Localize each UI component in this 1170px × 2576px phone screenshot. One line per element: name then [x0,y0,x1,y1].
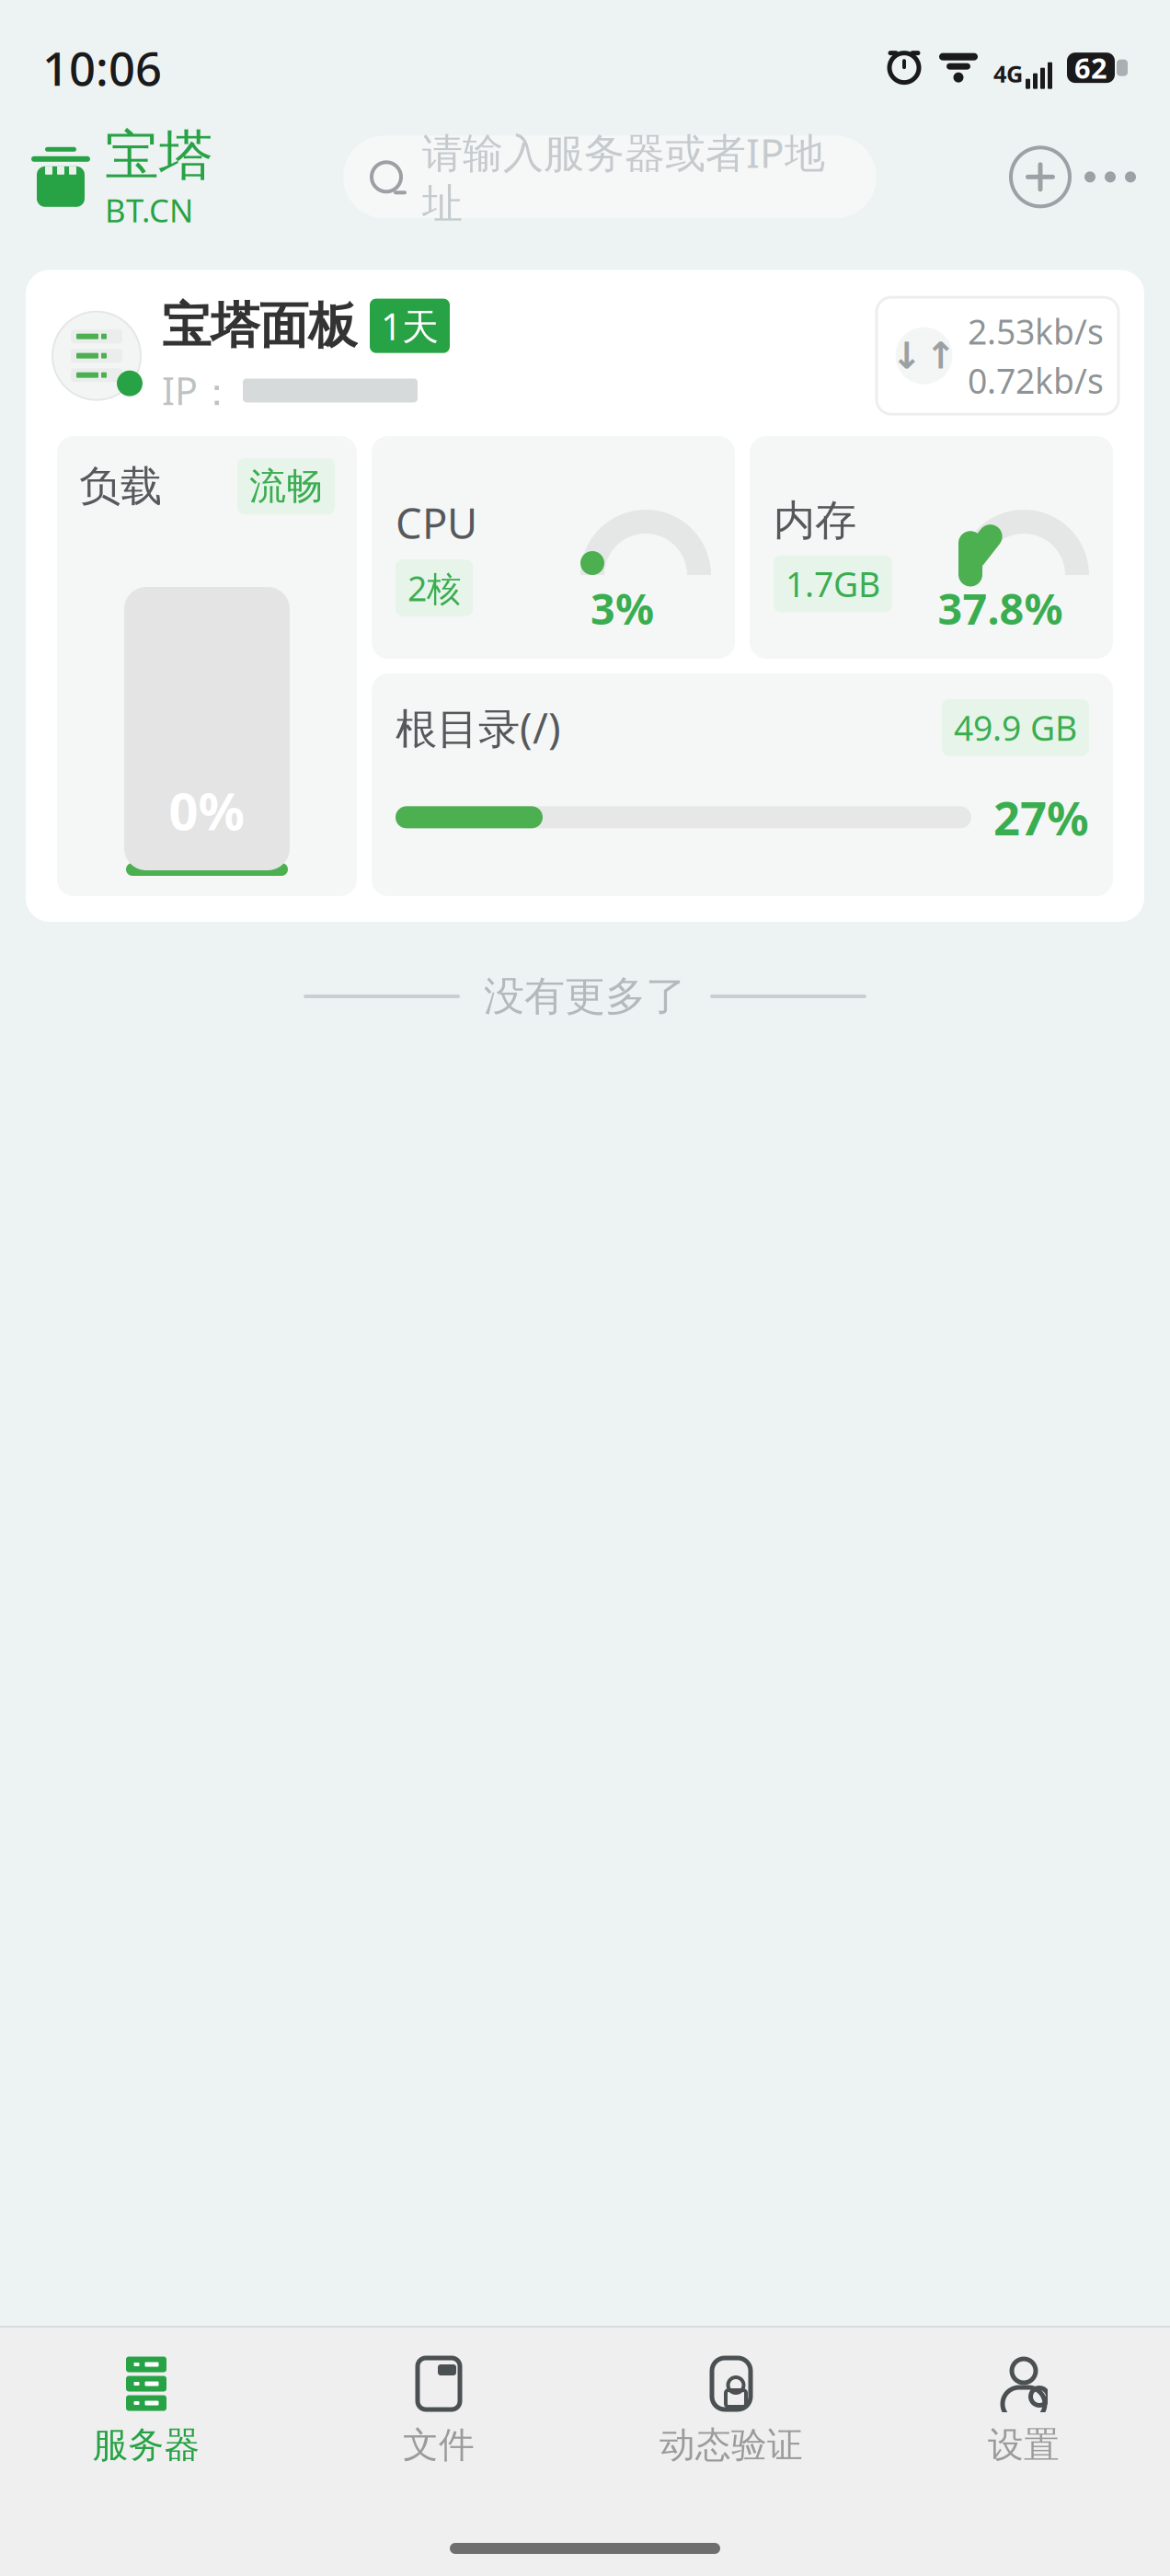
button[interactable]: 宝塔面板 [26,270,1144,922]
button[interactable]: 宝塔 BT.CN [24,123,213,231]
staticText: 负载 [79,461,162,512]
staticText: 设置 [988,2423,1060,2467]
staticText: 10:06 [42,37,162,99]
staticText: ↓ [891,335,923,377]
staticText: 2.53kb/s [968,308,1104,354]
staticText: 服务器 [92,2423,200,2467]
staticText: BT.CN [105,189,193,231]
staticText: IP： [162,365,235,416]
staticText: 3% [591,580,654,637]
staticText: 49.9 GB [954,705,1077,750]
staticText: 1天 [381,301,439,350]
staticText: 动态验证 [660,2423,803,2467]
staticText: 27% [993,786,1089,848]
staticText: 宝塔 [105,123,213,189]
staticText: CPU [396,495,477,550]
staticText: 宝塔面板 [162,296,357,356]
button[interactable]: 文件 [292,2342,585,2480]
button[interactable]: 更多 [1074,143,1146,211]
staticText: 4G [993,58,1023,89]
button[interactable]: 请输入服务器或者IP地址 [343,136,877,218]
button[interactable]: 服务器 [0,2342,292,2480]
button[interactable]: 添加服务器 [1006,143,1074,211]
staticText: 内存 [774,495,856,546]
staticText: 请输入服务器或者IP地址 [422,125,825,229]
staticText: 0% [169,776,245,845]
staticText: 没有更多了 [484,972,686,1021]
button[interactable]: 动态验证 [585,2342,877,2480]
staticText: ↑ [925,335,957,377]
staticText: 0.72kb/s [968,358,1104,403]
staticText: 根目录(/) [396,700,561,755]
staticText: 文件 [403,2423,475,2467]
staticText: 2核 [407,565,461,611]
staticText: 1.7GB [786,561,880,607]
button[interactable]: 设置 [877,2342,1170,2480]
staticText: 流畅 [249,464,323,509]
staticText: 62 [1074,49,1107,86]
staticText: 37.8% [938,580,1063,637]
